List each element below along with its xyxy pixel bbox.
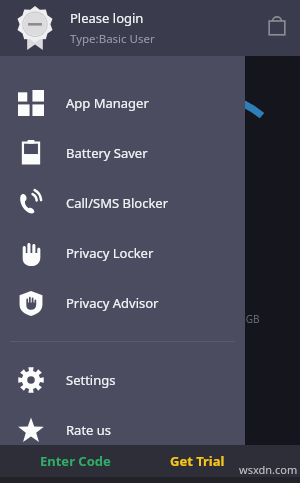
button[interactable]: Settings <box>0 355 245 405</box>
staticText: Type:Basic User <box>70 31 155 47</box>
staticText: Get Trial <box>170 452 225 470</box>
button[interactable]: Battery Saver <box>0 128 245 178</box>
button[interactable]: Call/SMS Blocker <box>0 178 245 228</box>
staticText: Please login <box>70 9 144 27</box>
staticText: Privacy Advisor <box>66 294 159 312</box>
staticText: Rate us <box>66 421 112 439</box>
button[interactable]: Privacy Advisor <box>0 278 245 328</box>
staticText: App Manager <box>66 94 149 112</box>
button[interactable]: Please login <box>0 0 245 56</box>
button[interactable]: App Manager <box>0 78 245 128</box>
staticText: wsxdn.com <box>239 462 298 477</box>
staticText: Settings <box>66 371 116 389</box>
staticText: Privacy Locker <box>66 244 154 262</box>
staticText: Call/SMS Blocker <box>66 194 169 212</box>
button[interactable]: Enter Code <box>0 445 150 477</box>
button[interactable]: Get Trial <box>150 445 245 477</box>
button[interactable]: Shop <box>262 12 292 42</box>
button[interactable]: Rate us <box>0 405 245 455</box>
button[interactable]: Privacy Locker <box>0 228 245 278</box>
staticText: Battery Saver <box>66 144 148 162</box>
staticText: Enter Code <box>40 452 111 470</box>
staticText: 5GB <box>240 312 260 326</box>
